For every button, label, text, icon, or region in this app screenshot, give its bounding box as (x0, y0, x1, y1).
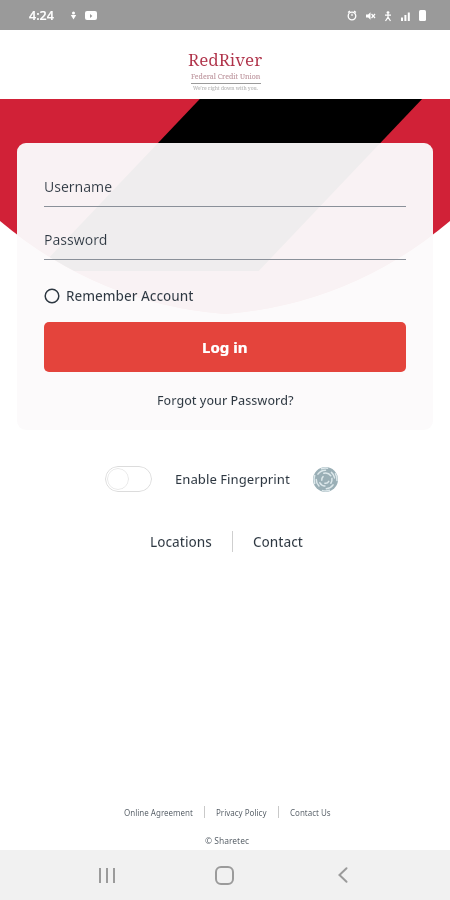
staticText: Enable Fingerprint (175, 470, 290, 488)
button[interactable]: Contact Us (290, 807, 331, 818)
button[interactable]: Online Agreement (124, 807, 193, 818)
button[interactable]: Fingerprint (313, 467, 338, 492)
staticText: Federal Credit Union (191, 72, 261, 82)
staticText: © Sharetec (205, 835, 250, 847)
button[interactable]: Back (319, 850, 367, 900)
button[interactable]: Forgot your Password? (157, 392, 294, 409)
button[interactable]: Remember Account (44, 287, 194, 305)
staticText: 4:24 (29, 7, 54, 24)
button[interactable]: Enable fingerprint toggle (105, 466, 152, 492)
button[interactable]: Contact (249, 533, 307, 551)
button[interactable]: Home (200, 850, 248, 900)
button[interactable]: Privacy Policy (216, 807, 267, 818)
button[interactable]: Log in (44, 322, 406, 372)
button[interactable]: Locations (146, 533, 216, 551)
staticText: Password (44, 230, 108, 249)
staticText: Remember Account (66, 287, 194, 305)
staticText: Log in (202, 337, 248, 357)
button[interactable]: Recents (83, 850, 131, 900)
staticText: We're right down with you. (193, 85, 258, 92)
staticText: Username (44, 177, 113, 196)
staticText: RedRiver (188, 48, 263, 71)
